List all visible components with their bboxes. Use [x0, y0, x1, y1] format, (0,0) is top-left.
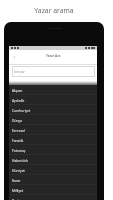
- button[interactable]: Evrensel: [9, 125, 97, 135]
- button[interactable]: Milliyet: [9, 185, 97, 195]
- button[interactable]: Fanatik: [9, 135, 97, 145]
- button[interactable]: Posta: [9, 195, 97, 200]
- button[interactable]: İsim yaz: [12, 66, 95, 77]
- staticText: Karar: [12, 178, 21, 182]
- button[interactable]: Cumhuriyet: [9, 105, 97, 115]
- staticText: Evrensel: [12, 128, 25, 132]
- staticText: İsim yaz: [14, 70, 25, 74]
- staticText: Yazar Ara: [46, 54, 61, 58]
- button[interactable]: Akşam: [9, 85, 97, 95]
- staticText: Milliyet: [12, 188, 24, 192]
- button[interactable]: Aydınlık: [9, 95, 97, 105]
- staticText: Cumhuriyet: [12, 108, 31, 112]
- button[interactable]: Geri: [10, 50, 19, 64]
- staticText: Akşam: [12, 88, 23, 92]
- staticText: Yazar arama: [34, 6, 74, 15]
- staticText: Habertürk: [12, 158, 28, 162]
- staticText: Posta: [12, 198, 21, 200]
- button[interactable]: Hürriyet: [9, 165, 97, 175]
- staticText: Fanatik: [12, 138, 24, 142]
- staticText: Hürriyet: [12, 168, 25, 172]
- button[interactable]: Dünya: [9, 115, 97, 125]
- button[interactable]: Habertürk: [9, 155, 97, 165]
- staticText: Dünya: [12, 118, 23, 122]
- staticText: Aydınlık: [12, 98, 25, 102]
- staticText: Fotomaç: [12, 148, 26, 152]
- button[interactable]: Fotomaç: [9, 145, 97, 155]
- button[interactable]: Karar: [9, 175, 97, 185]
